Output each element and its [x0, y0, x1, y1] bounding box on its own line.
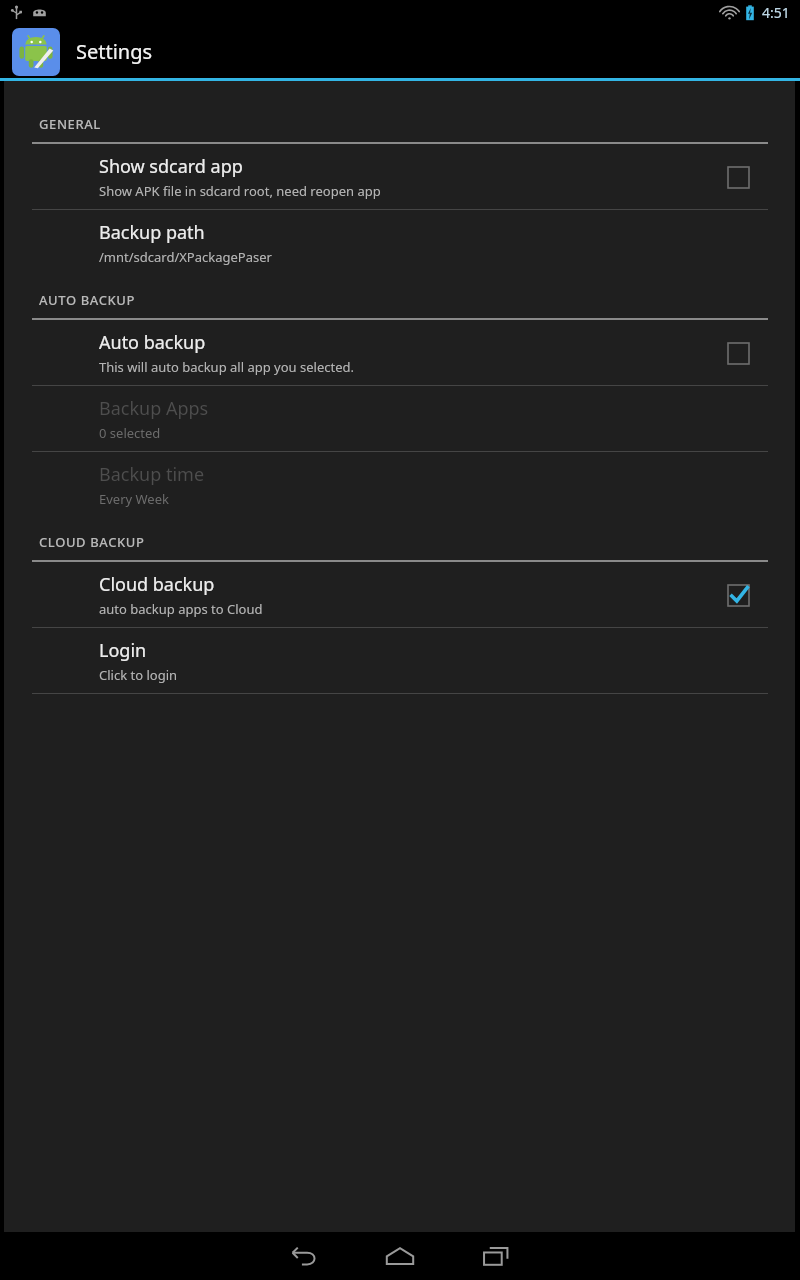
staticText: Click to login: [99, 666, 178, 684]
staticText: Backup path: [99, 220, 205, 245]
staticText: Backup time: [99, 462, 205, 487]
button[interactable]: Show sdcard app: [721, 160, 755, 194]
button[interactable]: Show sdcard app: [4, 144, 795, 209]
staticText: Show APK file in sdcard root, need reope…: [99, 182, 381, 200]
staticText: Auto backup: [99, 330, 206, 355]
button[interactable]: Auto backup: [4, 320, 795, 385]
staticText: GENERAL: [39, 115, 101, 133]
staticText: Cloud backup: [99, 572, 215, 597]
staticText: /mnt/sdcard/XPackagePaser: [99, 248, 272, 266]
button[interactable]: Backup path: [4, 210, 795, 275]
button[interactable]: Backup Apps: [4, 386, 795, 451]
staticText: 0 selected: [99, 424, 161, 442]
staticText: Login: [99, 638, 147, 663]
staticText: Backup Apps: [99, 396, 209, 421]
button[interactable]: Home: [358, 1232, 442, 1280]
staticText: 4:51: [762, 3, 790, 22]
button[interactable]: Auto backup: [721, 336, 755, 370]
button[interactable]: Recent apps: [454, 1232, 538, 1280]
staticText: Settings: [76, 38, 153, 65]
button[interactable]: Backup time: [4, 452, 795, 517]
button[interactable]: Cloud backup: [721, 578, 755, 612]
staticText: AUTO BACKUP: [39, 291, 136, 309]
staticText: CLOUD BACKUP: [39, 533, 145, 551]
staticText: Show sdcard app: [99, 154, 243, 179]
button[interactable]: Back: [262, 1232, 346, 1280]
staticText: auto backup apps to Cloud: [99, 600, 263, 618]
button[interactable]: Cloud backup: [4, 562, 795, 627]
button[interactable]: Login: [4, 628, 795, 693]
staticText: Every Week: [99, 490, 169, 508]
staticText: This will auto backup all app you select…: [99, 358, 354, 376]
